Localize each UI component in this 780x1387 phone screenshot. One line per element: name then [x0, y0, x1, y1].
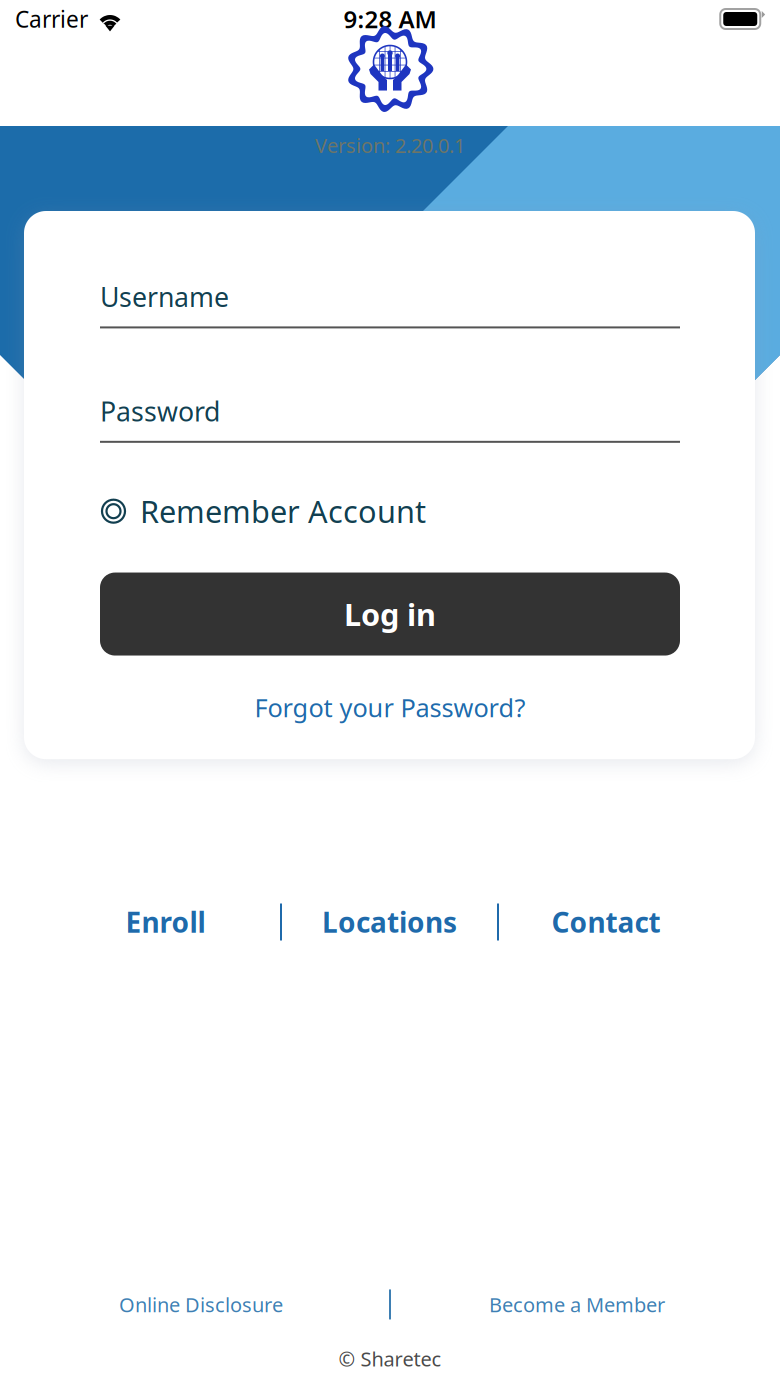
staticText: Forgot your Password?	[254, 691, 525, 724]
button[interactable]: Log in	[100, 573, 680, 656]
staticText: Carrier	[15, 4, 88, 34]
staticText: Password	[100, 393, 220, 429]
button[interactable]: Locations	[282, 898, 497, 946]
button[interactable]: Remember Account	[100, 491, 680, 531]
staticText: Remember Account	[140, 491, 426, 531]
staticText: Online Disclosure	[119, 1291, 283, 1318]
staticText: Version: 2.20.0.1	[315, 132, 465, 159]
staticText: © Sharetec	[338, 1345, 441, 1372]
staticText: Username	[100, 279, 229, 314]
button[interactable]: Forgot your Password?	[100, 691, 680, 724]
staticText: Locations	[322, 903, 457, 941]
staticText: Enroll	[125, 903, 205, 941]
staticText: Become a Member	[489, 1291, 665, 1318]
staticText: 9:28 AM	[343, 3, 436, 35]
button[interactable]: Online Disclosure	[70, 1287, 332, 1321]
staticText: Contact	[551, 903, 660, 941]
staticText: Log in	[344, 594, 436, 634]
button[interactable]: Contact	[499, 898, 713, 946]
button[interactable]: Become a Member	[469, 1287, 685, 1321]
button[interactable]: Enroll	[51, 898, 280, 946]
